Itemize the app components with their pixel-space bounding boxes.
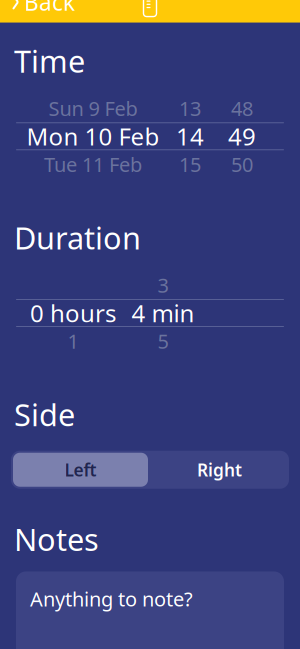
staticText: 50 (231, 151, 253, 178)
staticText: Duration (14, 217, 141, 258)
staticText: 49 (228, 120, 256, 152)
staticText: Anything to note? (30, 585, 193, 612)
staticText: Right (197, 458, 242, 481)
staticText: Left (64, 458, 96, 481)
staticText: Time (14, 41, 85, 81)
staticText: 14 (176, 120, 204, 152)
staticText: 13 (179, 95, 201, 122)
button[interactable]: Back (0, 0, 75, 23)
button[interactable]: Right (150, 451, 289, 489)
button[interactable]: Left (11, 451, 150, 489)
staticText: Back (24, 0, 75, 17)
staticText: 3 (157, 272, 168, 298)
staticText: Mon 10 Feb (26, 120, 159, 152)
staticText: Side (14, 394, 75, 435)
staticText: 5 (157, 328, 168, 354)
staticText: Sun 9 Feb (48, 95, 137, 122)
staticText: Tue 11 Feb (44, 151, 142, 178)
staticText: 4 min (131, 297, 194, 329)
staticText: 15 (179, 151, 201, 178)
staticText: Notes (14, 519, 99, 559)
staticText: 0 hours (30, 297, 116, 329)
staticText: 1 (67, 328, 78, 354)
button[interactable]: Anything to note? (0, 571, 300, 649)
staticText: 48 (231, 95, 253, 122)
